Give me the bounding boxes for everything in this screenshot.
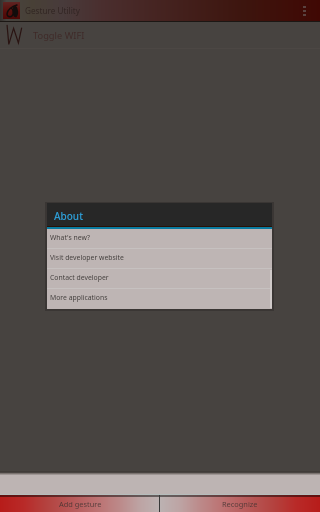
button[interactable]: Toggle WIFI: [0, 22, 320, 48]
button[interactable]: Recognize: [160, 495, 320, 512]
staticText: About: [54, 209, 83, 223]
button[interactable]: More options: [300, 0, 320, 21]
button[interactable]: More applications: [47, 289, 272, 309]
button[interactable]: What's new?: [47, 229, 272, 249]
button[interactable]: Visit developer website: [47, 249, 272, 269]
staticText: What's new?: [50, 233, 90, 242]
button[interactable]: Contact developer: [47, 269, 272, 289]
staticText: Recognize: [222, 499, 258, 509]
staticText: Add gesture: [59, 499, 102, 509]
staticText: Gesture Utility: [25, 5, 80, 16]
staticText: Toggle WIFI: [33, 29, 85, 42]
staticText: Contact developer: [50, 273, 109, 282]
button[interactable]: Add gesture: [0, 495, 160, 512]
staticText: Visit developer website: [50, 253, 124, 262]
staticText: More applications: [50, 293, 108, 302]
